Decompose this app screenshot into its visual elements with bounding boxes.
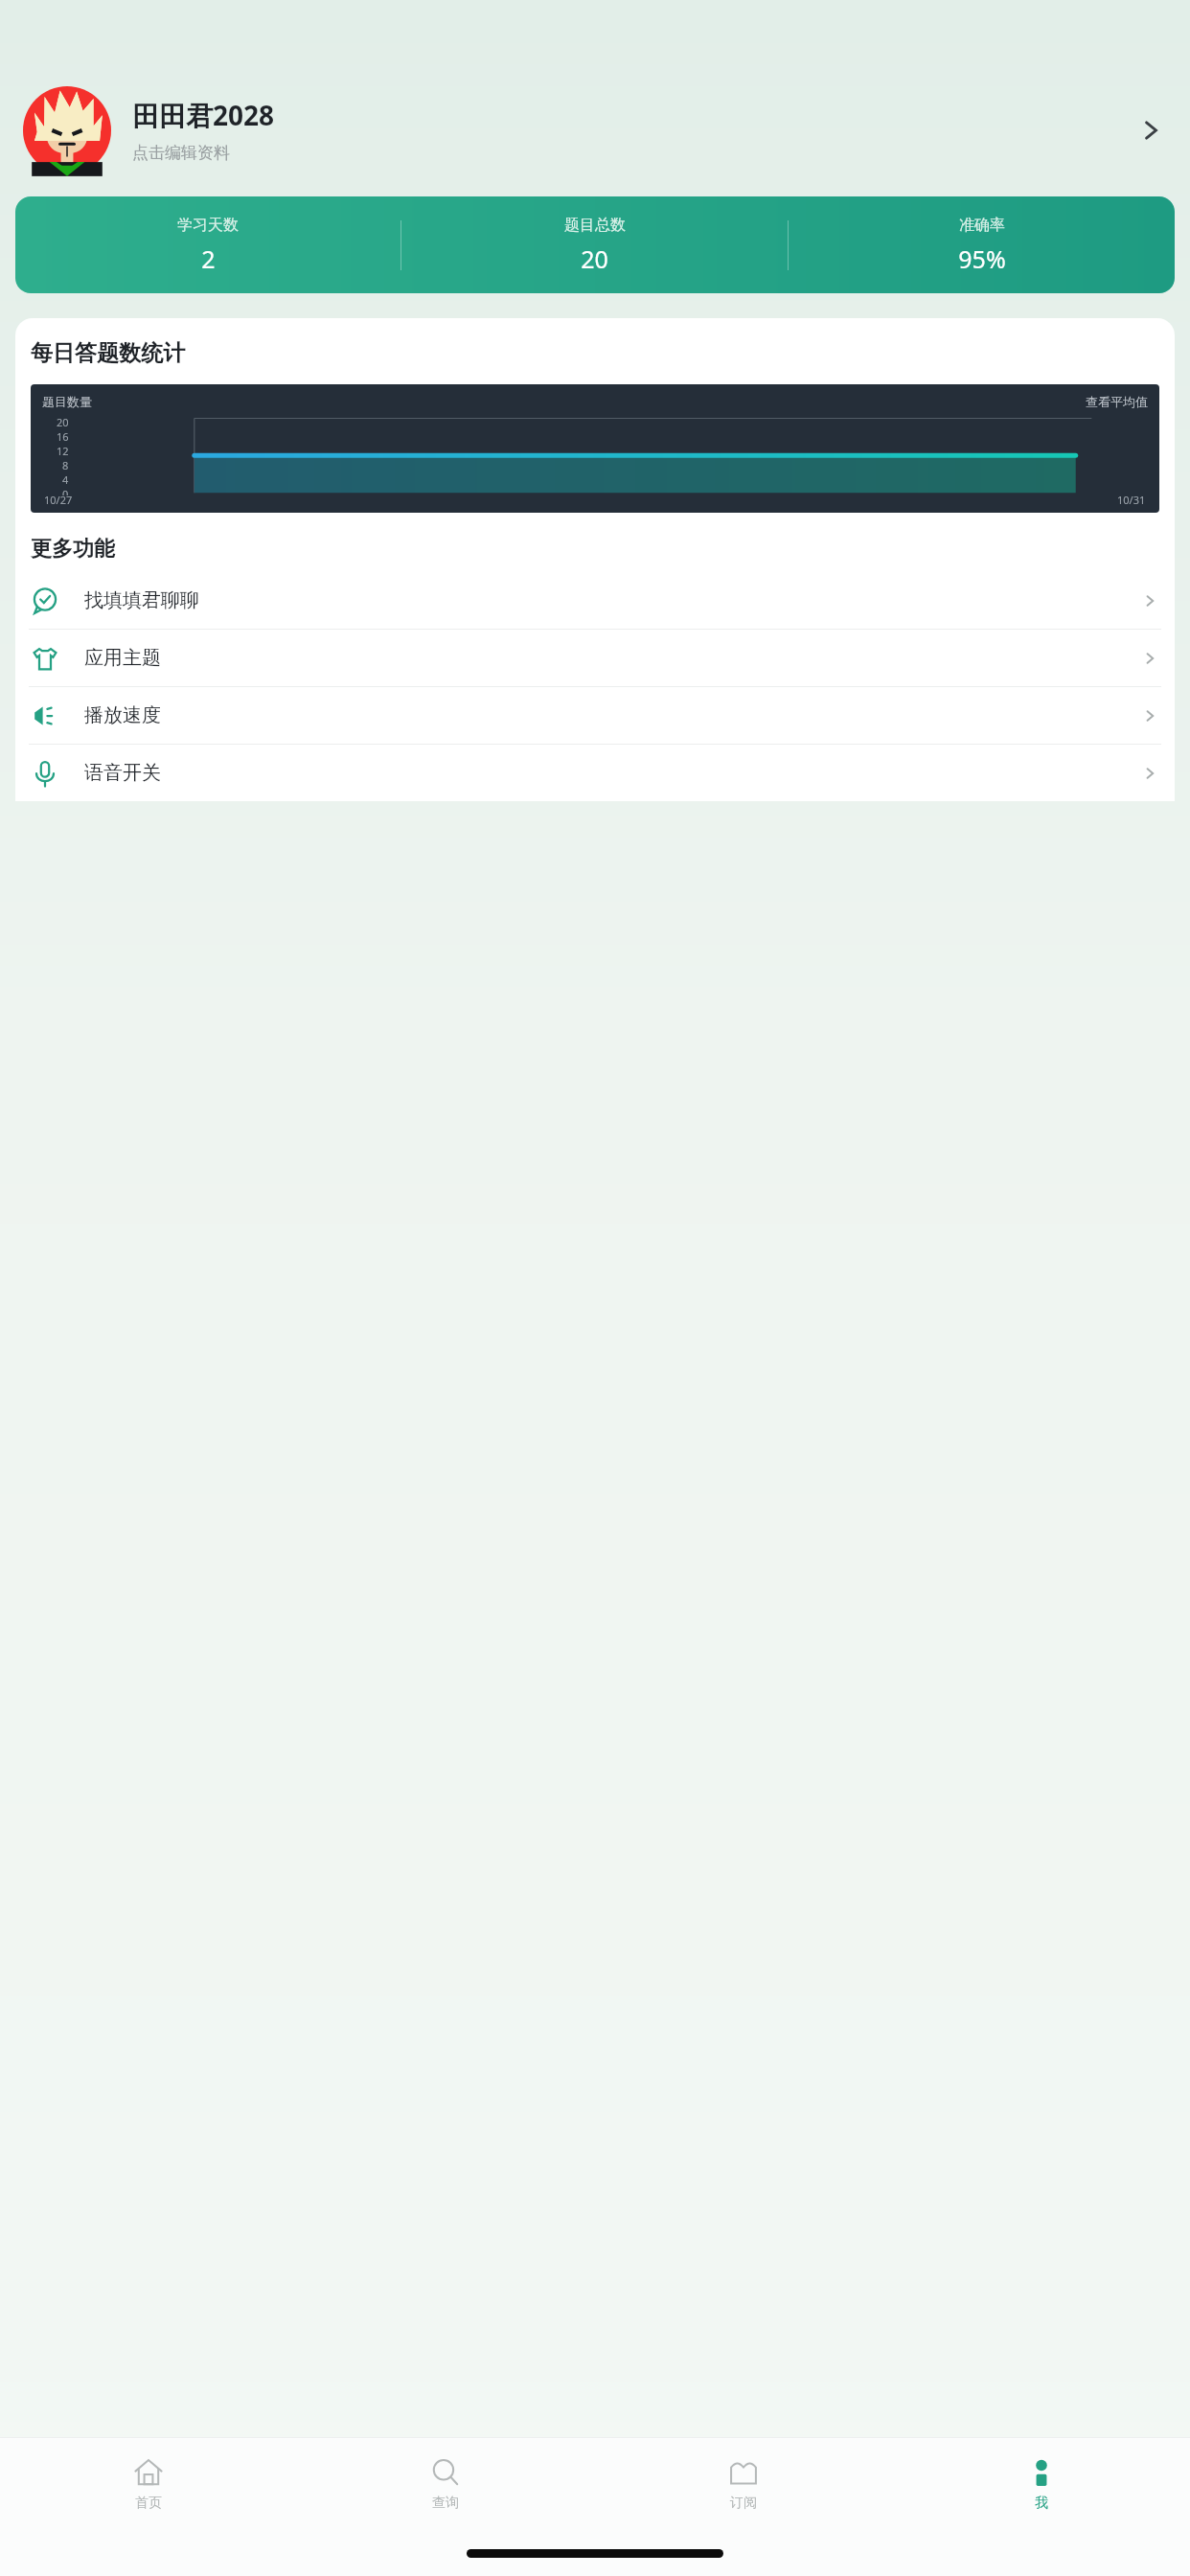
staticText: 学习天数 (177, 216, 239, 235)
button[interactable]: 学习天数 (15, 196, 1175, 293)
staticText: 首页 (135, 2495, 162, 2512)
button[interactable]: 查询 (297, 2438, 594, 2530)
staticText: 20 (581, 242, 608, 275)
staticText: 找填填君聊聊 (84, 588, 1140, 612)
staticText: 题目总数 (564, 216, 626, 235)
staticText: 田田君2028 (132, 97, 275, 133)
staticText: 播放速度 (84, 703, 1140, 727)
button[interactable]: 播放速度 (15, 687, 1175, 744)
staticText: 语音开关 (84, 761, 1140, 785)
staticText: 95% (958, 242, 1006, 275)
staticText: 题目数量 (42, 394, 92, 409)
button[interactable]: 首页 (0, 2438, 297, 2530)
button[interactable]: 田田君2028 (0, 80, 1190, 179)
staticText: 2 (201, 242, 216, 275)
button[interactable]: 应用主题 (15, 630, 1175, 686)
button[interactable]: 找填填君聊聊 (15, 572, 1175, 629)
staticText: 4 (62, 472, 69, 487)
staticText: 准确率 (959, 216, 1005, 235)
staticText: 16 (57, 429, 69, 444)
button[interactable]: 订阅 (594, 2438, 892, 2530)
other: Edit profile (1134, 114, 1167, 147)
staticText: 应用主题 (84, 646, 1140, 670)
staticText: 每日答题数统计 (31, 339, 185, 367)
staticText: 更多功能 (31, 536, 115, 563)
staticText: 订阅 (730, 2495, 757, 2512)
button[interactable]: 语音开关 (15, 745, 1175, 801)
staticText: 10/31 (1117, 493, 1146, 507)
staticText: 8 (62, 458, 69, 472)
staticText: 我 (1035, 2495, 1048, 2512)
staticText: 12 (57, 444, 69, 458)
staticText: 点击编辑资料 (132, 143, 230, 163)
staticText: 10/27 (44, 493, 73, 507)
staticText: 20 (57, 415, 69, 429)
button[interactable]: 我 (892, 2438, 1190, 2530)
staticText: 0 (62, 487, 69, 495)
staticText: 查看平均值 (1086, 394, 1148, 409)
staticText: 查询 (432, 2495, 459, 2512)
button[interactable]: 题目数量 (31, 384, 1159, 513)
